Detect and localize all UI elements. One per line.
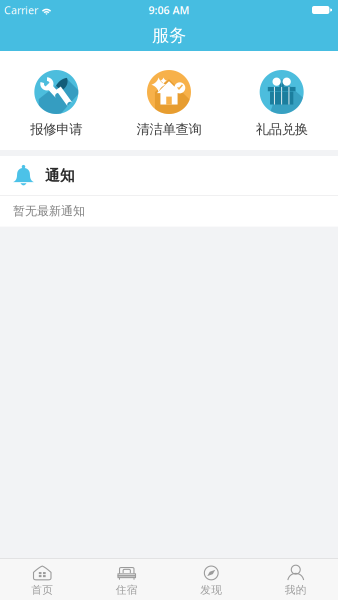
button[interactable]: 首页 [0, 556, 84, 600]
staticText: 报修申请 [30, 121, 82, 137]
staticText: 发现 [200, 583, 222, 596]
button[interactable]: 住宿 [84, 556, 169, 600]
staticText: 住宿 [116, 583, 138, 596]
button[interactable]: 发现 [169, 556, 253, 600]
staticText: 暂无最新通知 [13, 204, 85, 218]
button[interactable]: 报修申请 [0, 70, 113, 137]
button[interactable]: 通知 [0, 156, 338, 195]
button[interactable]: 清洁单查询 [113, 70, 225, 137]
button[interactable]: 礼品兑换 [225, 70, 338, 137]
staticText: 礼品兑换 [256, 121, 308, 137]
button[interactable]: 我的 [253, 556, 338, 600]
staticText: 清洁单查询 [136, 121, 201, 137]
staticText: Carrier [4, 3, 38, 17]
staticText: 9:06 AM [148, 3, 189, 17]
staticText: 服务 [152, 25, 186, 46]
staticText: 首页 [31, 583, 53, 596]
staticText: 通知 [45, 166, 75, 184]
staticText: 我的 [285, 583, 307, 596]
